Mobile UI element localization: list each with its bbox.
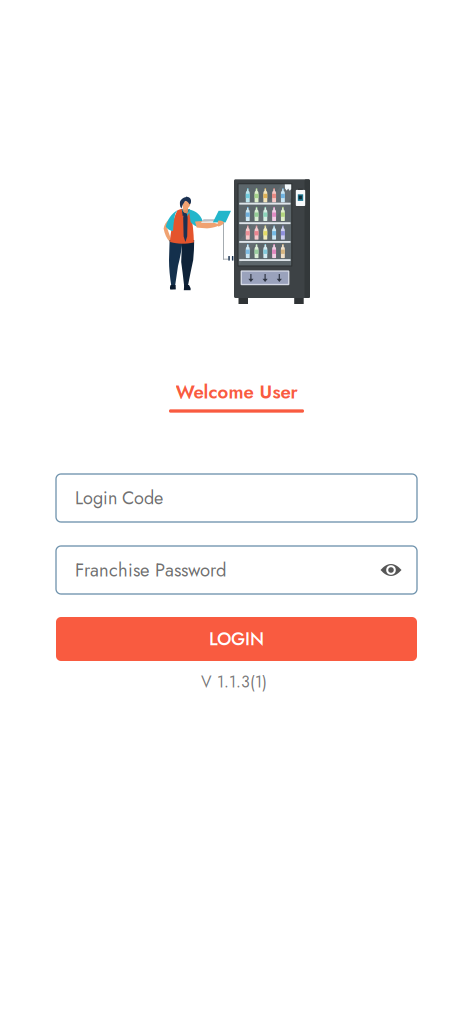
staticText: V 1.1.3(1) [201, 670, 267, 693]
button[interactable]: Show password [375, 554, 407, 586]
staticText: Login Code [75, 485, 163, 511]
staticText: Franchise Password [75, 557, 226, 583]
staticText: LOGIN [209, 626, 264, 652]
staticText: Welcome User [175, 378, 297, 405]
button[interactable]: LOGIN [56, 617, 417, 661]
